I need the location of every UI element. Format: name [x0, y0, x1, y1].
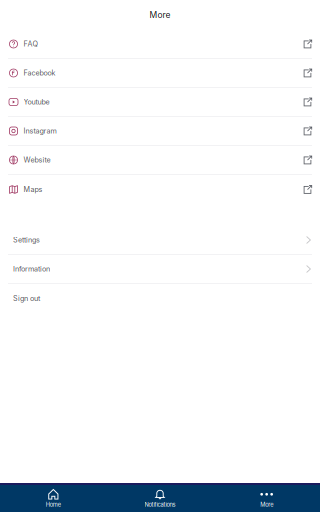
staticText: Facebook — [23, 69, 55, 77]
button[interactable]: Youtube — [0, 88, 320, 117]
button[interactable]: FAQ — [0, 30, 320, 59]
staticText: Information — [13, 265, 50, 273]
button[interactable]: Home — [0, 485, 107, 512]
button[interactable]: Notifications — [107, 485, 213, 512]
button[interactable]: More — [213, 485, 320, 512]
staticText: FAQ — [23, 40, 38, 48]
staticText: Youtube — [23, 98, 49, 106]
staticText: Settings — [13, 236, 40, 244]
staticText: More — [260, 501, 273, 508]
staticText: Maps — [23, 185, 42, 194]
staticText: More — [149, 10, 170, 20]
button[interactable]: Settings — [0, 226, 320, 255]
button[interactable]: Information — [0, 255, 320, 284]
button[interactable]: Sign out — [0, 284, 320, 313]
button[interactable]: Facebook — [0, 59, 320, 88]
button[interactable]: Instagram — [0, 117, 320, 146]
staticText: Instagram — [23, 127, 56, 135]
staticText: Notifications — [144, 501, 175, 508]
staticText: Website — [23, 156, 50, 164]
staticText: Sign out — [13, 294, 40, 303]
button[interactable]: Maps — [0, 175, 320, 204]
button[interactable]: Website — [0, 146, 320, 175]
staticText: Home — [46, 501, 61, 508]
